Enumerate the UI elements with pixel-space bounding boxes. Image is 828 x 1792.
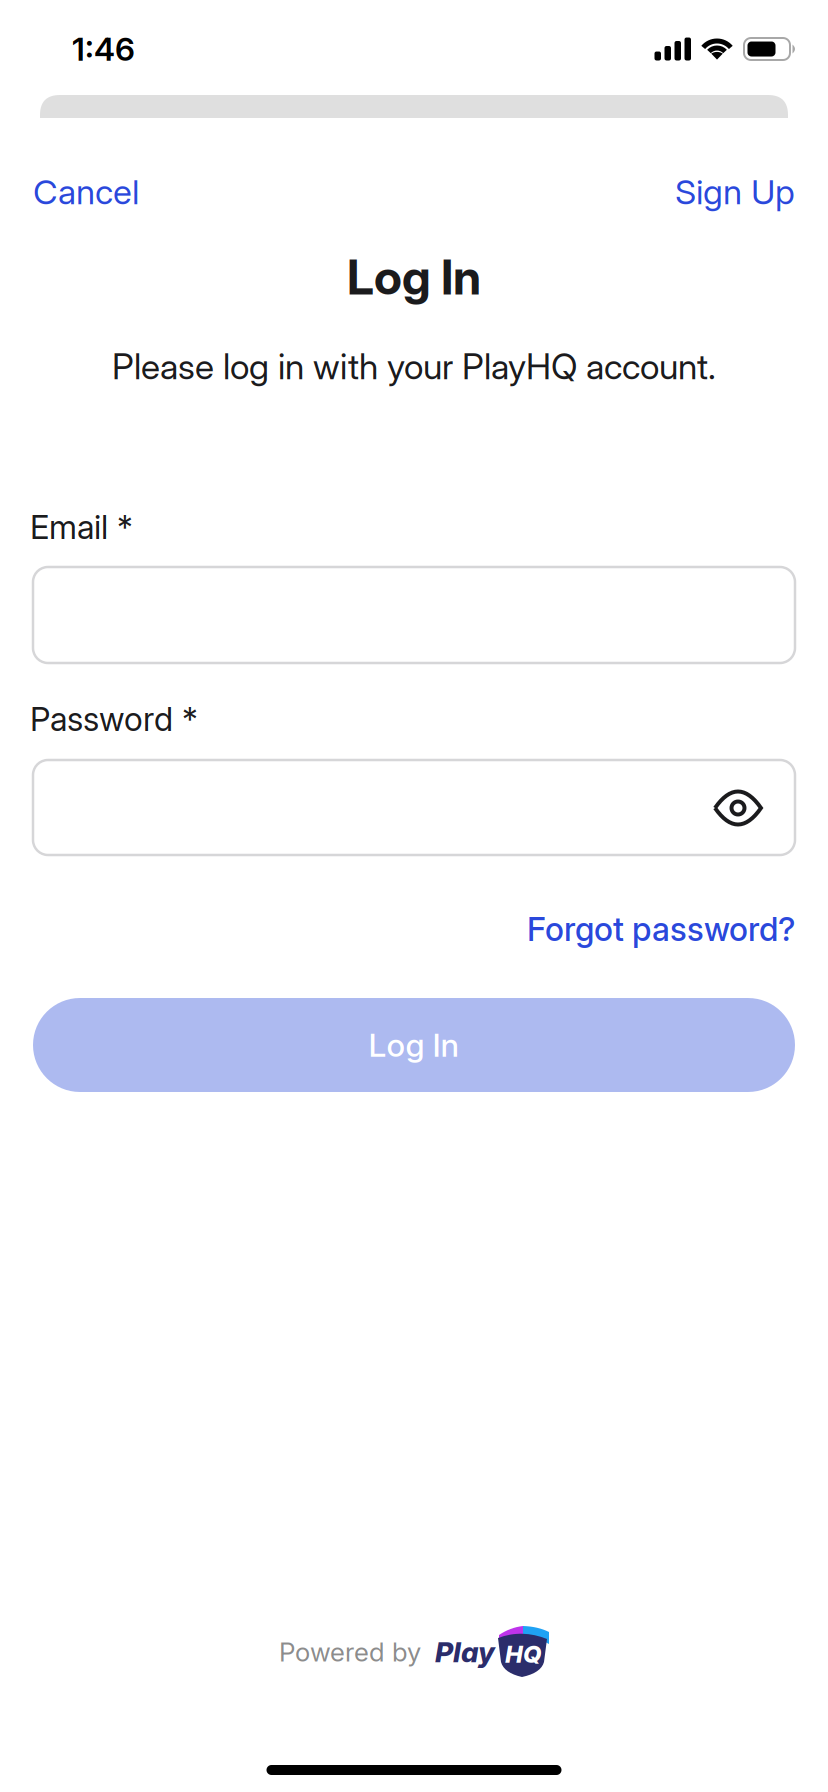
staticText: Log In xyxy=(368,1026,459,1064)
staticText: Forgot password? xyxy=(527,909,795,949)
staticText: Please log in with your PlayHQ account. xyxy=(112,345,716,388)
button[interactable] xyxy=(33,760,795,855)
button[interactable]: Forgot password? xyxy=(527,909,795,949)
button[interactable] xyxy=(33,567,795,663)
button[interactable]: Sign Up xyxy=(675,171,795,212)
button[interactable]: Log In xyxy=(33,998,795,1092)
staticText: HQ xyxy=(505,1639,541,1668)
staticText: Powered by xyxy=(279,1636,421,1668)
staticText: Log In xyxy=(347,248,481,306)
staticText: Sign Up xyxy=(675,171,795,212)
staticText: Email * xyxy=(30,507,133,547)
staticText: Play xyxy=(435,1635,495,1669)
staticText: Cancel xyxy=(33,171,139,212)
button[interactable]: Cancel xyxy=(33,171,139,212)
staticText: Password * xyxy=(30,699,198,739)
button[interactable] xyxy=(712,790,764,826)
staticText: 1:46 xyxy=(72,30,135,68)
